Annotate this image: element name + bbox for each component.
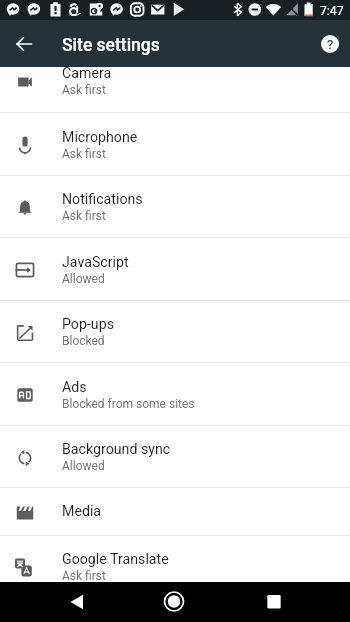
staticText: Allowed: [62, 459, 105, 473]
staticText: Ask first: [62, 569, 106, 582]
button[interactable]: Notifications: [0, 177, 350, 238]
button[interactable]: Background sync: [0, 427, 350, 488]
staticText: Ask first: [62, 209, 106, 223]
staticText: Pop-ups: [62, 316, 114, 333]
staticText: Microphone: [62, 129, 138, 146]
button[interactable]: Microphone: [0, 114, 350, 176]
staticText: Site settings: [62, 35, 160, 56]
staticText: Blocked from some sites: [62, 397, 195, 411]
staticText: Ask first: [62, 83, 106, 97]
staticText: Allowed: [62, 272, 105, 286]
button[interactable]: Ads: [0, 364, 350, 426]
button[interactable]: JavaScript: [0, 239, 350, 301]
button[interactable]: Camera: [0, 67, 350, 113]
button[interactable]: Google Translate: [0, 537, 350, 582]
staticText: Blocked: [62, 334, 105, 348]
staticText: 7:47: [320, 4, 344, 18]
button[interactable]: Back: [0, 20, 48, 67]
button[interactable]: Back: [53, 582, 101, 622]
staticText: Camera: [62, 67, 112, 82]
staticText: Ask first: [62, 147, 106, 161]
staticText: JavaScript: [62, 254, 129, 271]
staticText: Media: [62, 503, 102, 520]
button[interactable]: Pop-ups: [0, 302, 350, 363]
staticText: Ads: [62, 379, 87, 396]
staticText: Notifications: [62, 191, 143, 208]
staticText: Background sync: [62, 441, 171, 458]
staticText: Google Translate: [62, 551, 169, 568]
staticText: ?: [327, 37, 334, 52]
button[interactable]: Home: [150, 582, 198, 622]
button[interactable]: Help: [306, 20, 350, 67]
button[interactable]: Recents: [250, 582, 298, 622]
button[interactable]: Media: [0, 489, 350, 536]
